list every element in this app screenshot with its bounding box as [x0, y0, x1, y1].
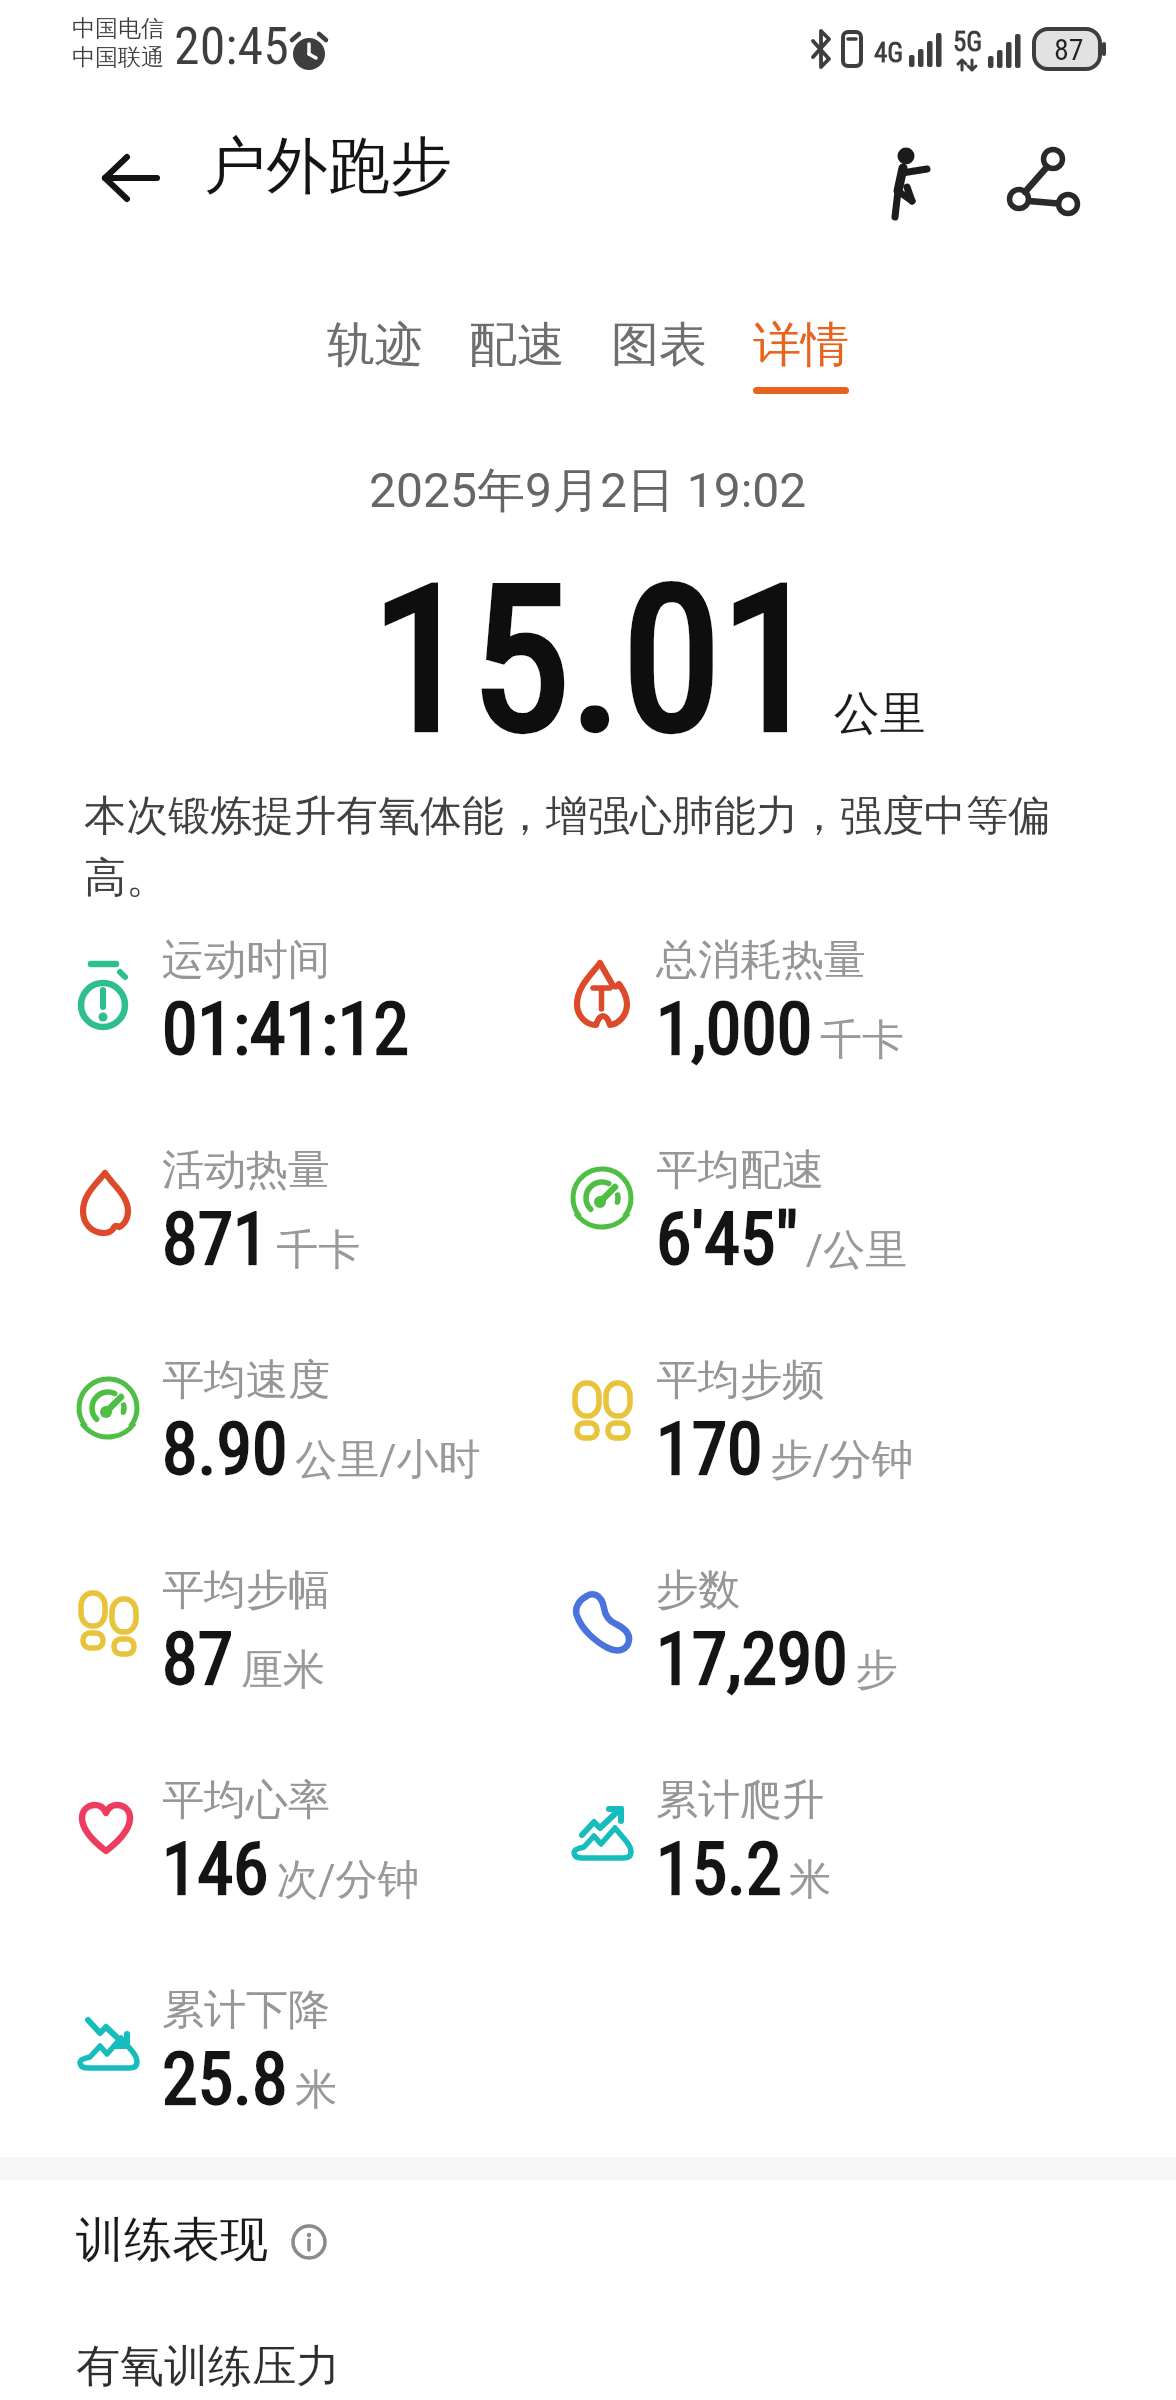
- staticText: 6'45" /公里: [656, 1197, 908, 1281]
- button[interactable]: 累计爬升: [570, 1774, 832, 1911]
- button[interactable]: 平均步频: [570, 1354, 914, 1491]
- staticText: 5G: [953, 26, 983, 58]
- staticText: 01:41:12: [162, 987, 409, 1071]
- staticText: 平均速度: [162, 1354, 330, 1407]
- staticText: 详情: [753, 315, 849, 375]
- staticText: 活动热量: [162, 1144, 330, 1197]
- staticText: 训练表现: [76, 2210, 268, 2270]
- staticText: 87: [1054, 32, 1084, 67]
- staticText: 871 千卡: [162, 1197, 361, 1281]
- button[interactable]: 累计下降: [76, 1984, 338, 2121]
- staticText: 2025年9月2日 19:02: [369, 461, 807, 521]
- staticText: 17,290 步: [656, 1617, 898, 1701]
- button[interactable]: 平均步幅: [76, 1564, 330, 1701]
- staticText: 累计爬升: [656, 1774, 824, 1827]
- button[interactable]: [1001, 141, 1085, 225]
- button[interactable]: 详情: [753, 315, 849, 394]
- button[interactable]: 平均配速: [570, 1144, 908, 1281]
- button[interactable]: 平均速度: [76, 1354, 481, 1491]
- staticText: 170 步/分钟: [656, 1407, 914, 1491]
- staticText: 累计下降: [162, 1984, 330, 2037]
- button[interactable]: 总消耗热量: [570, 934, 904, 1071]
- staticText: 运动时间: [162, 934, 330, 987]
- staticText: 平均步幅: [162, 1564, 330, 1617]
- staticText: 步数: [656, 1564, 740, 1617]
- button[interactable]: 运动时间: [76, 934, 409, 1071]
- staticText: 中国联通: [72, 43, 164, 72]
- button[interactable]: 活动热量: [76, 1144, 361, 1281]
- staticText: 15.2 米: [656, 1827, 832, 1911]
- staticText: 图表: [611, 315, 707, 375]
- staticText: 8.90 公里/小时: [162, 1407, 481, 1491]
- button[interactable]: 轨迹: [327, 315, 423, 394]
- button[interactable]: 图表: [611, 315, 707, 394]
- staticText: 有氧训练压力: [76, 2339, 340, 2394]
- staticText: 中国电信: [72, 14, 164, 43]
- staticText: 平均配速: [656, 1144, 824, 1197]
- staticText: 本次锻炼提升有氧体能，增强心肺能力，强度中等偏 高。: [84, 790, 1050, 905]
- staticText: 87 厘米: [162, 1617, 325, 1701]
- button[interactable]: 训练表现: [76, 2210, 328, 2270]
- button[interactable]: [94, 142, 166, 214]
- staticText: 4G: [874, 37, 904, 69]
- staticText: 配速: [469, 315, 565, 375]
- button[interactable]: 平均心率: [76, 1774, 420, 1911]
- staticText: 146 次/分钟: [162, 1827, 420, 1911]
- staticText: 20:45: [174, 16, 289, 77]
- staticText: 户外跑步: [204, 127, 452, 205]
- staticText: 15.01 公里: [372, 543, 926, 777]
- staticText: 总消耗热量: [656, 934, 866, 987]
- button[interactable]: [862, 145, 946, 229]
- staticText: 25.8 米: [162, 2037, 338, 2121]
- staticText: 轨迹: [327, 315, 423, 375]
- staticText: 1,000 千卡: [656, 987, 904, 1071]
- button[interactable]: 配速: [469, 315, 565, 394]
- staticText: 平均步频: [656, 1354, 824, 1407]
- staticText: 平均心率: [162, 1774, 330, 1827]
- button[interactable]: 步数: [570, 1564, 898, 1701]
